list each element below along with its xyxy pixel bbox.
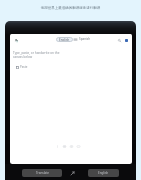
button[interactable]: English [88, 169, 119, 177]
button[interactable]: Search [116, 37, 123, 44]
button[interactable]: Translate [22, 169, 62, 177]
button[interactable]: Account [123, 37, 130, 44]
button[interactable]: Swap languages [72, 36, 78, 42]
button[interactable]: Google Translate [12, 36, 20, 44]
staticText: Paste [20, 65, 28, 69]
staticText: Type, paste, or handwrite on the [13, 51, 60, 55]
staticText: Translate [36, 171, 49, 175]
staticText: 使用世界上最准确的翻译服务进行翻译 [0, 6, 141, 10]
staticText: canvas below [13, 55, 33, 59]
button[interactable]: Voice input [55, 144, 59, 148]
button[interactable]: Paste [16, 65, 28, 69]
staticText: English [98, 171, 109, 175]
button[interactable]: Handwrite [62, 144, 66, 148]
button[interactable]: Split screen [69, 170, 75, 176]
staticText: Spanish [79, 37, 91, 41]
staticText: English [59, 38, 70, 42]
button[interactable]: English [56, 37, 73, 42]
button[interactable]: Camera [69, 144, 73, 148]
button[interactable]: Keyboard [76, 144, 80, 148]
